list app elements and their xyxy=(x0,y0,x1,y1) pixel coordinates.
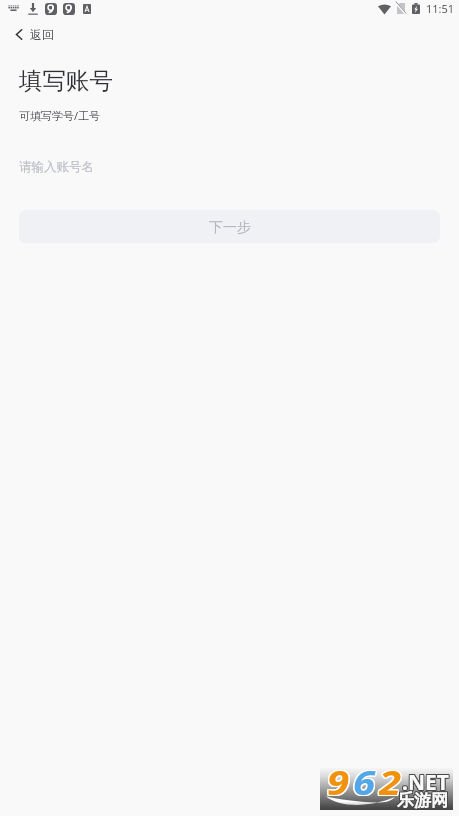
staticText: 9 xyxy=(327,759,353,803)
staticText: 6 xyxy=(354,760,380,804)
staticText: 9 xyxy=(327,758,353,802)
staticText: 可填写学号/工号 xyxy=(19,108,101,123)
staticText: 乐游网 xyxy=(397,790,448,811)
staticText: 乐游网 xyxy=(398,790,449,811)
staticText: 乐游网 xyxy=(397,791,448,812)
button[interactable]: 返回 xyxy=(0,24,54,44)
staticText: 9 xyxy=(328,760,354,804)
staticText: 6 xyxy=(353,759,379,803)
button[interactable]: 下一步 xyxy=(19,210,440,243)
staticText: .NET xyxy=(401,767,448,796)
staticText: 下一步 xyxy=(209,219,251,237)
staticText: .NET xyxy=(402,769,449,798)
staticText: 乐游网 xyxy=(396,790,447,811)
staticText: .NET xyxy=(401,768,448,797)
staticText: 乐游网 xyxy=(397,789,448,810)
staticText: 6 xyxy=(352,760,378,804)
staticText: 2 xyxy=(380,758,406,802)
staticText: 2 xyxy=(378,758,404,802)
staticText: 乐游网 xyxy=(398,791,449,812)
button[interactable]: 请输入账号名 xyxy=(0,146,459,186)
staticText: 6 xyxy=(354,758,380,802)
staticText: .NET xyxy=(403,767,450,796)
staticText: 9 xyxy=(327,760,353,804)
staticText: 2 xyxy=(380,760,406,804)
staticText: 9 xyxy=(328,758,354,802)
staticText: 返回 xyxy=(30,27,54,42)
staticText: 9 xyxy=(326,758,352,802)
staticText: .NET xyxy=(402,767,449,796)
staticText: 2 xyxy=(380,759,406,803)
staticText: 6 xyxy=(353,758,379,802)
staticText: 乐游网 xyxy=(396,789,447,810)
staticText: 11:51 xyxy=(426,1,455,16)
staticText: 9 xyxy=(326,760,352,804)
staticText: .NET xyxy=(401,769,448,798)
staticText: 9 xyxy=(328,759,354,803)
staticText: .NET xyxy=(402,768,449,797)
staticText: 2 xyxy=(379,758,405,802)
staticText: 2 xyxy=(378,759,404,803)
staticText: 6 xyxy=(352,759,378,803)
staticText: 6 xyxy=(353,760,379,804)
staticText: .NET xyxy=(403,768,450,797)
staticText: 乐游网 xyxy=(396,791,447,812)
staticText: 2 xyxy=(379,760,405,804)
staticText: 请输入账号名 xyxy=(19,159,94,175)
staticText: .NET xyxy=(403,769,450,798)
staticText: 填写账号 xyxy=(19,66,113,96)
staticText: 9 xyxy=(326,759,352,803)
staticText: 2 xyxy=(379,759,405,803)
staticText: 6 xyxy=(354,759,380,803)
staticText: 乐游网 xyxy=(398,789,449,810)
staticText: 6 xyxy=(352,758,378,802)
staticText: 2 xyxy=(378,760,404,804)
